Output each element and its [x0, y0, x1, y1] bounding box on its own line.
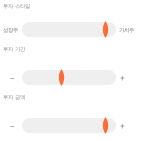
staticText: 투자 스타일	[3, 3, 30, 10]
staticText: +	[120, 121, 125, 132]
staticText: 투자 기간	[3, 46, 25, 53]
staticText: +	[120, 73, 125, 84]
staticText: 성장주	[3, 27, 18, 34]
staticText: −	[10, 121, 15, 132]
staticText: 투자 금액	[3, 94, 25, 101]
staticText: −	[10, 73, 15, 84]
staticText: 가치주	[119, 27, 134, 34]
